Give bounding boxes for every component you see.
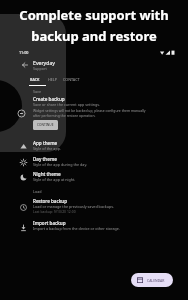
staticText: Load or manage the previously saved back… — [33, 204, 114, 209]
button[interactable]: HELP — [48, 77, 58, 82]
staticText: CONTINUE — [37, 123, 54, 127]
button[interactable]: Import backup — [33, 220, 120, 231]
button[interactable]: Restore backup — [33, 198, 114, 214]
staticText: Save — [33, 89, 42, 94]
button[interactable]: App theme — [33, 140, 61, 151]
staticText: Restore backup — [33, 198, 68, 204]
staticText: App theme — [33, 140, 58, 146]
staticText: CALENDAR — [147, 278, 165, 283]
button[interactable]: CONTACT — [63, 77, 80, 82]
staticText: Import backup — [33, 220, 66, 226]
staticText: Load — [33, 189, 42, 194]
staticText: Style of the app. — [33, 146, 61, 151]
button[interactable]: Day theme — [33, 156, 88, 167]
button[interactable]: Night theme — [33, 171, 76, 182]
staticText: Last backup: 9/10/20 12:00 — [33, 209, 76, 214]
button[interactable]: BACK — [30, 77, 40, 82]
staticText: Day theme — [33, 156, 57, 162]
staticText: Style of the app during the day. — [33, 162, 88, 167]
staticText: Support — [33, 66, 47, 71]
staticText: HELP — [48, 77, 58, 82]
staticText: Create backup — [33, 96, 65, 102]
staticText: CONTACT — [63, 77, 80, 82]
staticText: Night theme — [33, 171, 61, 177]
staticText: Save or share the current app settings. — [33, 102, 100, 107]
staticText: Everyday — [33, 59, 55, 66]
button[interactable]: CONTINUE — [33, 120, 58, 130]
staticText: Import a backup from the device or other… — [33, 226, 120, 231]
staticText: Widget settings will not be backed up, p… — [33, 108, 153, 118]
staticText: backup and restore — [31, 27, 157, 45]
staticText: 11:00 — [19, 50, 29, 55]
button[interactable]: Back — [19, 59, 30, 70]
staticText: BACK — [30, 77, 40, 82]
button[interactable]: CALENDAR — [131, 273, 173, 287]
staticText: Complete support with — [19, 6, 169, 24]
staticText: Style of the app at night. — [33, 177, 76, 182]
